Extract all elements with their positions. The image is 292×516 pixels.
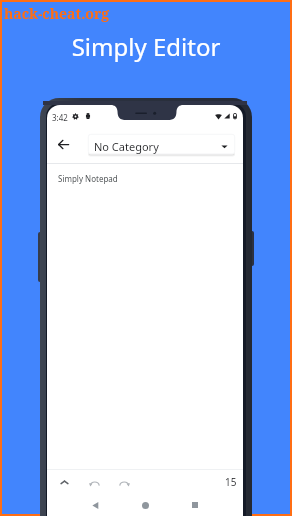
- button[interactable]: Redo: [116, 474, 132, 490]
- staticText: Simply Editor: [2, 30, 290, 63]
- button[interactable]: Recent apps: [187, 497, 203, 513]
- staticText: hack-cheat.org: [4, 4, 110, 23]
- staticText: 15: [225, 475, 237, 489]
- staticText: 3:42: [52, 112, 68, 123]
- staticText: Simply Notepad: [58, 173, 118, 184]
- button[interactable]: Expand toolbar: [56, 474, 72, 490]
- button[interactable]: Undo: [86, 474, 102, 490]
- staticText: No Category: [94, 139, 159, 154]
- button[interactable]: Back: [87, 497, 103, 513]
- button[interactable]: Home: [137, 497, 153, 513]
- button[interactable]: No Category: [88, 134, 235, 156]
- button[interactable]: Back: [54, 135, 72, 153]
